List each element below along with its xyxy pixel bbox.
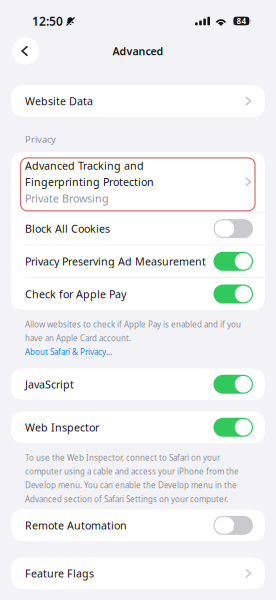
staticText: Advanced section of Safari Settings on y…: [25, 494, 228, 504]
staticText: Fingerprinting Protection: [25, 175, 154, 189]
staticText: Feature Flags: [25, 566, 94, 580]
staticText: Privacy Preserving Ad Measurement: [25, 254, 206, 268]
button[interactable]: Check for Apple Pay: [11, 278, 265, 310]
staticText: Advanced Tracking and: [25, 158, 144, 173]
staticText: computer using a cable and access your i…: [25, 466, 239, 477]
staticText: About Safari & Privacy...: [25, 347, 112, 357]
button[interactable]: About Safari & Privacy...: [0, 343, 276, 357]
button[interactable]: Remote Automation: [11, 509, 265, 541]
staticText: have an Apple Card account.: [25, 333, 131, 343]
button[interactable]: Web Inspector: [11, 411, 265, 443]
staticText: Allow websites to check if Apple Pay is …: [25, 319, 241, 330]
button[interactable]: JavaScript: [11, 368, 265, 400]
staticText: Privacy: [25, 133, 56, 145]
button[interactable]: Website Data: [11, 85, 265, 117]
staticText: Advanced: [112, 44, 163, 58]
staticText: Check for Apple Pay: [25, 287, 126, 301]
staticText: Remote Automation: [25, 518, 127, 532]
staticText: 12:50: [32, 13, 63, 29]
staticText: Block All Cookies: [25, 221, 110, 236]
staticText: To use the Web Inspector, connect to Saf…: [25, 452, 220, 463]
staticText: Website Data: [25, 94, 93, 108]
staticText: Develop menu. You can enable the Develop…: [25, 480, 237, 490]
staticText: Web Inspector: [25, 420, 99, 434]
staticText: Private Browsing: [25, 191, 109, 205]
button[interactable]: Back: [9, 34, 42, 67]
button[interactable]: Advanced Tracking and: [11, 152, 265, 212]
staticText: JavaScript: [25, 377, 74, 391]
staticText: 84: [236, 16, 246, 26]
button[interactable]: Block All Cookies: [11, 213, 265, 245]
button[interactable]: Feature Flags: [11, 557, 265, 589]
button[interactable]: Privacy Preserving Ad Measurement: [11, 245, 265, 277]
